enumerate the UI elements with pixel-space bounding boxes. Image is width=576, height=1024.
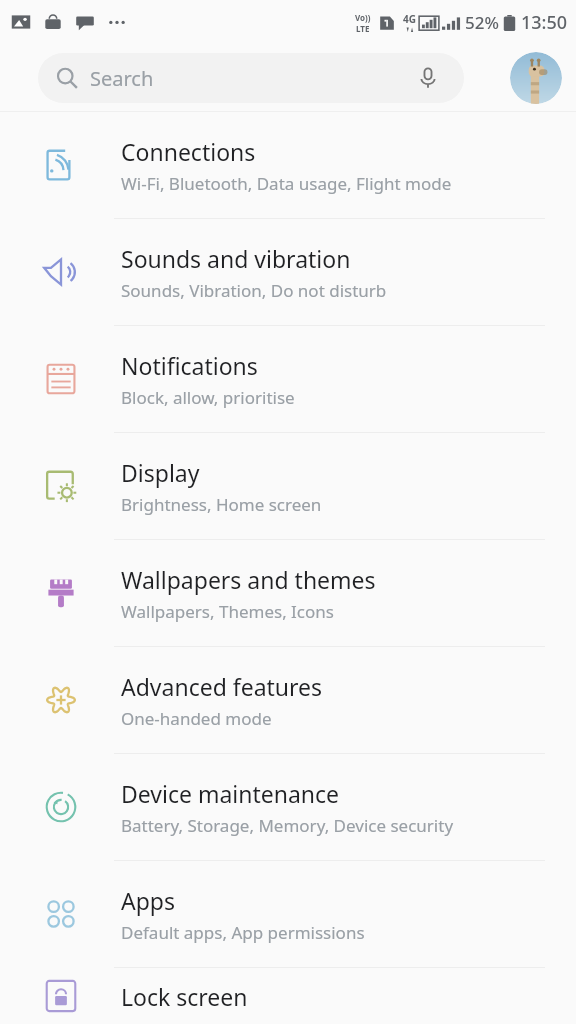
staticText: Search [90,65,154,92]
staticText: 4G [403,12,416,26]
staticText: Connections [121,136,256,167]
staticText: Battery, Storage, Memory, Device securit… [121,814,454,837]
button[interactable]: Notifications [0,326,576,433]
staticText: Advanced features [121,671,323,702]
staticText: Block, allow, prioritise [121,386,295,409]
button[interactable]: Search [38,53,464,103]
staticText: Display [121,457,200,488]
button[interactable]: Wallpapers and themes [0,540,576,647]
button[interactable]: Display [0,433,576,540]
button[interactable]: Lock screen [0,968,576,1024]
staticText: Notifications [121,350,258,381]
staticText: Apps [121,885,176,916]
button[interactable]: Advanced features [0,647,576,754]
button[interactable]: Voice search [410,60,446,96]
staticText: 13:50 [521,10,568,35]
staticText: Vo)) [355,12,371,23]
staticText: Wallpapers, Themes, Icons [121,600,334,623]
button[interactable]: Device maintenance [0,754,576,861]
staticText: LTE [356,23,370,34]
staticText: Wi-Fi, Bluetooth, Data usage, Flight mod… [121,172,452,195]
button[interactable]: Profile [510,52,562,104]
staticText: Sounds and vibration [121,243,351,274]
staticText: Lock screen [121,981,248,1012]
button[interactable]: Apps [0,861,576,968]
staticText: One-handed mode [121,707,272,730]
staticText: Sounds, Vibration, Do not disturb [121,279,387,302]
button[interactable]: Connections [0,112,576,219]
button[interactable]: Sounds and vibration [0,219,576,326]
staticText: Brightness, Home screen [121,493,322,516]
staticText: 52% [465,11,499,34]
staticText: Wallpapers and themes [121,564,376,595]
staticText: Default apps, App permissions [121,921,365,944]
staticText: Device maintenance [121,778,340,809]
